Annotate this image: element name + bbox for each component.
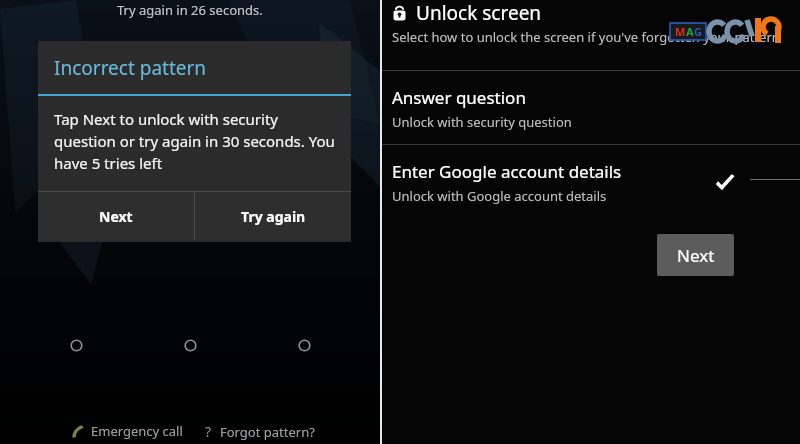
staticText: Unlock with Google account details xyxy=(392,187,607,205)
button[interactable]: Next xyxy=(38,192,194,240)
other: Lock xyxy=(392,6,407,21)
button[interactable]: Try again xyxy=(195,192,351,240)
button[interactable]: ? xyxy=(203,422,317,441)
staticText: Emergency call xyxy=(91,422,183,440)
button[interactable]: Next xyxy=(657,234,734,276)
staticText: Answer question xyxy=(392,86,526,109)
staticText: M xyxy=(675,24,686,39)
staticText: A xyxy=(686,24,694,39)
button[interactable]: Enter Google account details xyxy=(382,145,800,218)
button[interactable]: Answer question xyxy=(382,71,800,144)
staticText: G xyxy=(694,24,702,39)
staticText: Unlock screen xyxy=(416,0,542,26)
staticText: Try again in 26 seconds. xyxy=(117,1,263,19)
staticText: Unlock with security question xyxy=(392,113,572,131)
other: Emergency call xyxy=(70,424,85,439)
staticText: Tap Next to unlock with security questio… xyxy=(54,109,339,174)
button[interactable]: Emergency call xyxy=(68,422,185,440)
staticText: Next xyxy=(99,207,133,226)
staticText: Try again xyxy=(241,207,306,226)
staticText: ? xyxy=(205,422,212,441)
staticText: Select how to unlock the screen if you'v… xyxy=(392,28,780,46)
staticText: Forgot pattern? xyxy=(220,423,315,441)
staticText: Next xyxy=(677,244,715,267)
staticText: Incorrect pattern xyxy=(54,55,207,81)
staticText: Enter Google account details xyxy=(392,160,622,183)
